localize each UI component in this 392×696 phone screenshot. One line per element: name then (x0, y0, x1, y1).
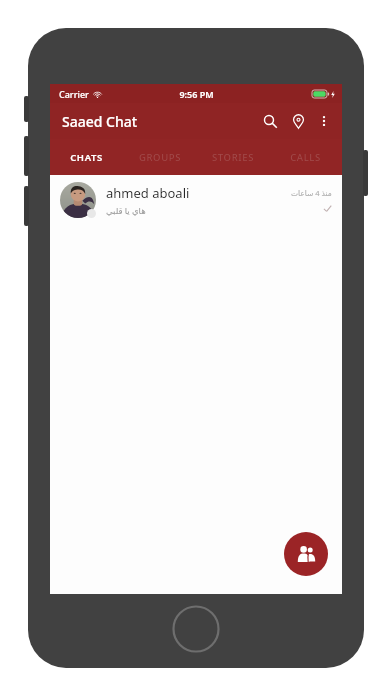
button[interactable]: Search (256, 107, 284, 135)
staticText: CHATS (70, 151, 103, 164)
staticText: CALLS (290, 151, 321, 164)
staticText: STORIES (212, 151, 254, 164)
staticText: ahmed aboali (106, 184, 190, 202)
staticText: منذ 4 ساعات (291, 188, 332, 198)
button[interactable]: STORIES (196, 139, 269, 175)
staticText: هاي يا قلبي (106, 205, 146, 217)
button[interactable]: GROUPS (123, 139, 196, 175)
button[interactable]: ahmed aboali (50, 175, 342, 225)
button[interactable]: CHATS (50, 139, 123, 175)
staticText: 9:56 PM (179, 88, 214, 100)
staticText: GROUPS (139, 151, 181, 164)
button[interactable]: CALLS (269, 139, 342, 175)
button[interactable]: Location (284, 107, 312, 135)
button[interactable]: New chat contacts (284, 532, 328, 576)
button[interactable]: More options (312, 109, 336, 133)
staticText: Saaed Chat (62, 112, 138, 131)
staticText: Carrier (59, 88, 89, 100)
